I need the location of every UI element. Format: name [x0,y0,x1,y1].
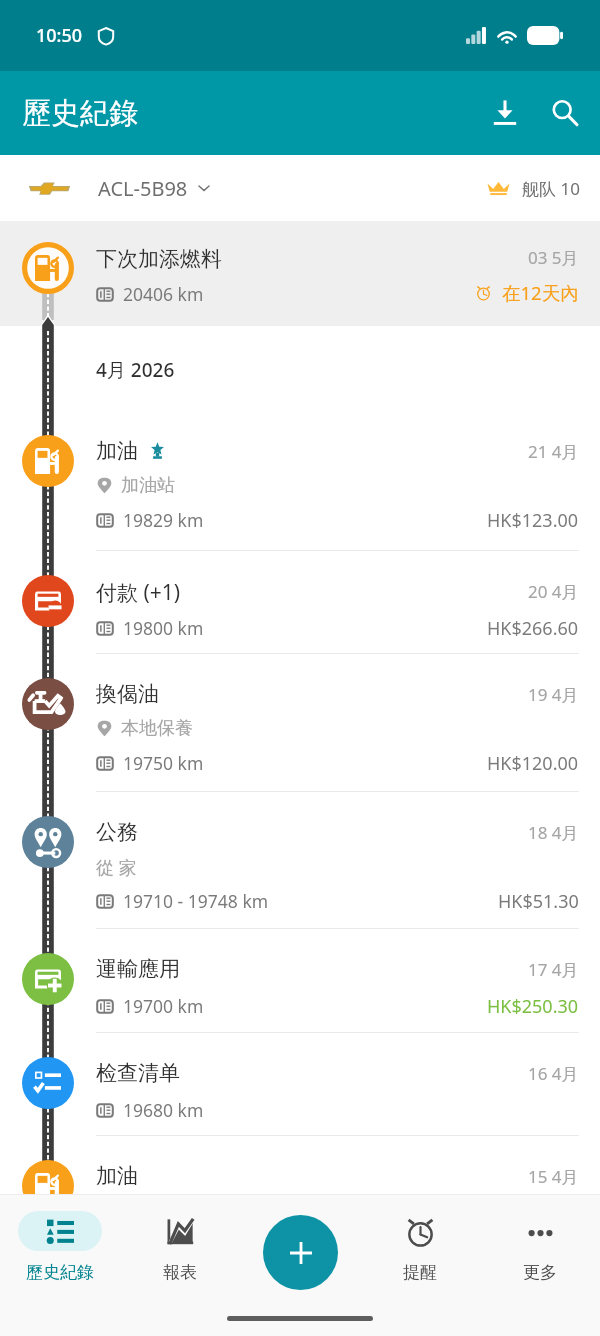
staticText: 03 5月 [528,246,579,269]
staticText: 舰队 10 [522,177,580,200]
staticText: HK$51.30 [498,889,579,914]
staticText: 從 家 [96,855,137,880]
staticText: 更多 [523,1262,557,1283]
staticText: 19829 km [123,508,204,532]
button[interactable]: Add entry [263,1215,338,1290]
staticText: 15 4月 [528,1165,579,1188]
staticText: 16 4月 [528,1062,579,1085]
staticText: 4月 2026 [96,357,175,383]
button[interactable]: ACL-5B98 [0,155,600,221]
button[interactable] [0,1135,600,1250]
staticText: 19800 km [123,616,204,640]
staticText: 在12天內 [502,280,579,305]
button[interactable] [0,550,600,654]
staticText: 20 4月 [528,580,579,603]
staticText: 19 4月 [528,683,579,706]
button[interactable]: Download [475,83,535,143]
staticText: 加油 [96,438,138,464]
staticText: 19700 km [123,994,204,1018]
staticText: 運輸應用 [96,956,180,982]
staticText: 加油站 [121,474,175,497]
staticText: 19710 - 19748 km [123,889,269,913]
staticText: 加油 [96,1163,138,1189]
staticText: HK$123.00 [487,508,579,533]
button[interactable] [0,410,600,551]
staticText: 17 4月 [528,958,579,981]
staticText: 本地保養 [121,717,193,740]
button[interactable] [0,928,600,1033]
staticText: 19750 km [123,751,204,775]
staticText: 下次加添燃料 [96,246,222,272]
button[interactable] [0,653,600,792]
button[interactable]: 報表 [120,1194,240,1283]
staticText: 歷史紀錄 [22,95,138,132]
staticText: HK$266.60 [487,616,579,641]
staticText: 歷史紀錄 [26,1262,94,1283]
staticText: 21 4月 [528,440,579,463]
button[interactable]: 歷史紀錄 [0,1194,120,1283]
staticText: ACL-5B98 [98,175,188,202]
button[interactable] [0,791,600,929]
button[interactable] [0,1032,600,1136]
staticText: 提醒 [403,1262,437,1283]
button[interactable]: 提醒 [360,1194,480,1283]
staticText: 付款 (+1) [96,578,181,607]
button[interactable] [0,221,600,326]
staticText: HK$250.30 [487,994,579,1019]
staticText: 18 4月 [528,821,579,844]
staticText: 19680 km [123,1098,204,1122]
button[interactable]: Search [535,83,595,143]
staticText: 20406 km [123,282,204,306]
staticText: 检查清单 [96,1060,180,1086]
button[interactable]: 更多 [480,1194,600,1283]
staticText: HK$120.00 [487,751,579,776]
staticText: 10:50 [36,23,83,48]
staticText: 換偈油 [96,681,159,707]
staticText: 報表 [163,1262,197,1283]
staticText: 公務 [96,819,138,845]
